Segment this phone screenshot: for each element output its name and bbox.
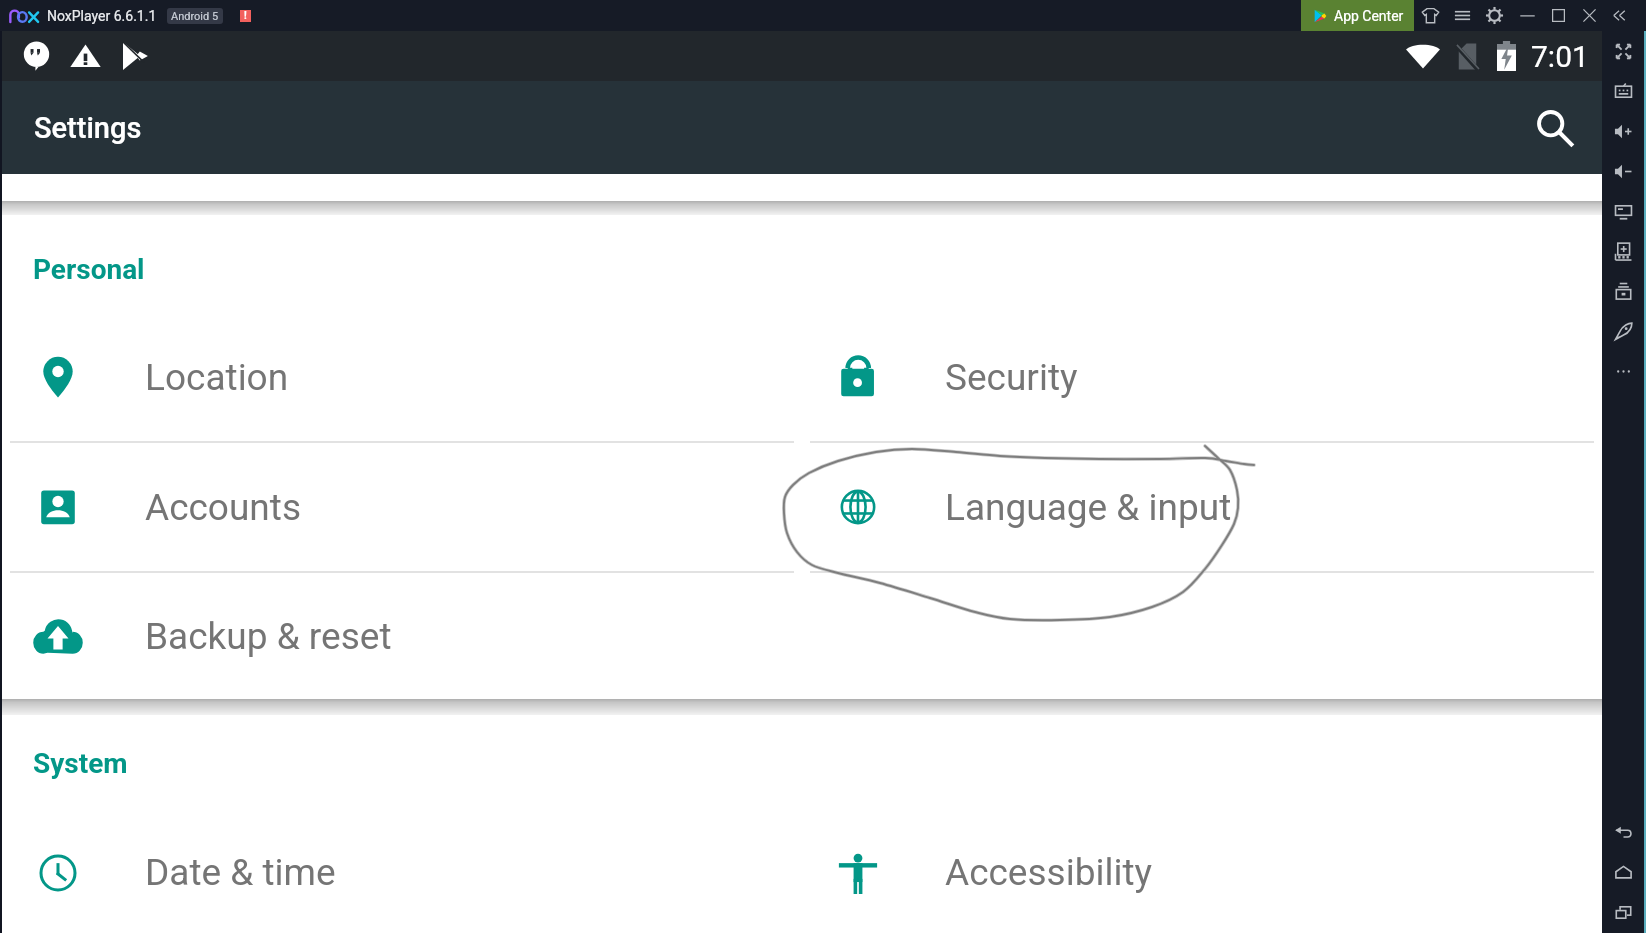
button[interactable]: App Center bbox=[1301, 0, 1414, 31]
button[interactable]: Minimize bbox=[1511, 0, 1543, 31]
button[interactable]: Screenshot bbox=[1602, 191, 1644, 231]
button[interactable]: Accessibility bbox=[802, 812, 1602, 933]
staticText: 7:01 bbox=[1531, 39, 1589, 74]
button[interactable]: Emulator settings bbox=[1478, 0, 1511, 31]
button[interactable]: Speed boost bbox=[1602, 311, 1644, 351]
button[interactable]: Accounts bbox=[2, 443, 802, 571]
staticText: Location bbox=[145, 356, 289, 399]
staticText: Language & input bbox=[945, 486, 1232, 529]
button[interactable]: Theme bbox=[1414, 0, 1446, 31]
button[interactable]: Date & time bbox=[2, 812, 802, 933]
staticText: Backup & reset bbox=[145, 615, 392, 658]
staticText: NoxPlayer 6.6.1.1 bbox=[47, 8, 157, 24]
staticText: App Center bbox=[1334, 8, 1404, 24]
button[interactable]: Back bbox=[1602, 812, 1644, 852]
button[interactable]: Keyboard bbox=[1602, 71, 1644, 111]
button[interactable]: Recent apps bbox=[1602, 892, 1644, 932]
button[interactable]: Volume up bbox=[1602, 111, 1644, 151]
button[interactable]: File manager bbox=[1602, 271, 1644, 311]
button[interactable]: Location bbox=[2, 313, 802, 441]
button[interactable]: Collapse toolbar bbox=[1605, 0, 1640, 31]
staticText: Accessibility bbox=[945, 851, 1153, 894]
staticText: Personal bbox=[33, 253, 145, 286]
staticText: Security bbox=[945, 356, 1078, 399]
staticText: Accounts bbox=[145, 486, 302, 529]
button[interactable]: Menu bbox=[1446, 0, 1478, 31]
button[interactable]: Install APK bbox=[1602, 231, 1644, 271]
button[interactable]: Search bbox=[1523, 96, 1587, 160]
staticText: Android 5 bbox=[171, 10, 219, 23]
button[interactable]: Home bbox=[1602, 852, 1644, 892]
button[interactable]: Backup & reset bbox=[2, 573, 802, 699]
staticText: ! bbox=[244, 10, 247, 22]
button[interactable]: Maximize bbox=[1543, 0, 1574, 31]
staticText: System bbox=[33, 747, 128, 780]
button[interactable]: Language & input bbox=[802, 443, 1602, 571]
button[interactable]: Volume down bbox=[1602, 151, 1644, 191]
staticText: Settings bbox=[34, 111, 142, 145]
staticText: Date & time bbox=[145, 851, 336, 894]
button[interactable]: Full screen bbox=[1602, 31, 1644, 71]
button[interactable]: Close bbox=[1574, 0, 1605, 31]
button[interactable]: More options bbox=[1602, 351, 1644, 391]
button[interactable]: Security bbox=[802, 313, 1602, 441]
